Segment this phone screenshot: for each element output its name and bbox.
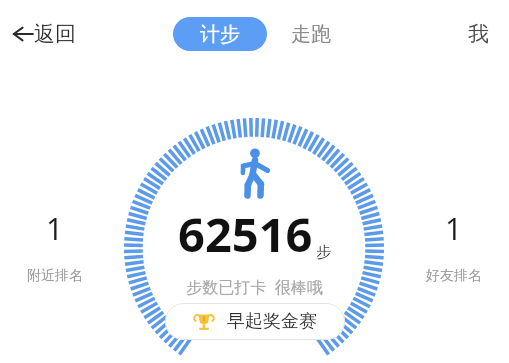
staticText: 附近排名 xyxy=(27,267,83,285)
staticText: 计步 xyxy=(200,22,240,47)
button[interactable]: 1 xyxy=(416,204,492,289)
button[interactable]: 早起奖金赛 xyxy=(165,303,345,340)
staticText: 我 xyxy=(468,21,489,47)
staticText: 返回 xyxy=(34,21,76,47)
staticText: 步 xyxy=(316,243,331,262)
staticText: 62516 xyxy=(178,202,313,266)
staticText: 走跑 xyxy=(291,22,331,47)
button[interactable]: 我 xyxy=(458,15,499,53)
staticText: 好友排名 xyxy=(426,267,482,285)
button[interactable]: 返回 xyxy=(8,15,80,53)
staticText: 1 xyxy=(445,208,463,249)
button[interactable]: 1 xyxy=(17,204,93,289)
staticText: 早起奖金赛 xyxy=(227,310,317,333)
button[interactable]: 计步 xyxy=(173,17,267,51)
button[interactable]: 走跑 xyxy=(285,17,337,51)
staticText: 步数已打卡 很棒哦 xyxy=(186,276,323,298)
staticText: 1 xyxy=(46,208,64,249)
